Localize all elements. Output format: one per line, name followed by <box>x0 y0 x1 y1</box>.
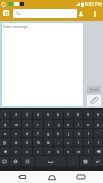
button[interactable]: Apps <box>3 10 9 16</box>
button[interactable]: $ <box>22 138 32 146</box>
button[interactable]: Recents <box>71 171 91 183</box>
button[interactable]: c <box>33 147 43 155</box>
button[interactable]: h <box>54 129 63 137</box>
button[interactable]: . <box>67 156 79 166</box>
staticText: e <box>26 122 29 127</box>
staticText: y <box>58 122 60 127</box>
button[interactable]: Send <box>87 86 101 93</box>
staticText: i <box>78 122 79 127</box>
button[interactable]: Settings <box>80 156 91 166</box>
button[interactable]: d <box>22 129 32 137</box>
staticText: 0 <box>97 112 100 117</box>
staticText: 4 <box>37 112 40 117</box>
button[interactable]: ! <box>84 147 93 155</box>
button[interactable]: 7 <box>64 110 73 119</box>
button[interactable]: Backspace <box>94 147 103 155</box>
button[interactable]: 9 <box>84 110 93 119</box>
staticText: b <box>57 149 60 154</box>
button[interactable]: q <box>0 120 10 128</box>
staticText: Send <box>90 87 99 92</box>
staticText: # <box>15 140 18 145</box>
button[interactable]: Symbols <box>0 156 9 166</box>
button[interactable]: 4 <box>33 110 43 119</box>
staticText: 9:03 PM <box>85 1 102 7</box>
staticText: p <box>97 122 100 127</box>
button[interactable]: ) <box>84 138 93 146</box>
button[interactable]: v <box>44 147 53 155</box>
button[interactable]: Space <box>35 156 66 166</box>
button[interactable]: More options <box>90 9 100 19</box>
staticText: . <box>73 159 74 164</box>
button[interactable]: @ <box>0 138 10 146</box>
button[interactable]: n <box>64 147 73 155</box>
staticText: v <box>48 149 50 154</box>
staticText: 9 <box>87 112 90 117</box>
button[interactable]: 8 <box>74 110 83 119</box>
button[interactable]: m <box>74 147 83 155</box>
button[interactable]: j <box>64 129 73 137</box>
button[interactable]: g <box>44 129 53 137</box>
staticText: / <box>98 140 100 145</box>
button[interactable]: Enter <box>92 156 103 166</box>
button[interactable]: Enter message <box>2 23 83 106</box>
button[interactable]: % <box>33 138 43 146</box>
button[interactable]: z <box>11 147 21 155</box>
button[interactable]: Shift <box>0 147 10 155</box>
button[interactable]: & <box>44 138 53 146</box>
button[interactable]: To <box>13 9 77 18</box>
staticText: 7 <box>67 112 70 117</box>
button[interactable]: t <box>44 120 53 128</box>
button[interactable]: i <box>74 120 83 128</box>
button[interactable]: w <box>11 120 21 128</box>
button[interactable]: x <box>22 147 32 155</box>
button[interactable]: k <box>74 129 83 137</box>
button[interactable]: 3 <box>22 110 32 119</box>
button[interactable]: - <box>54 138 63 146</box>
button[interactable]: # <box>11 138 21 146</box>
button[interactable]: o <box>84 120 93 128</box>
staticText: x <box>26 149 28 154</box>
staticText: z <box>15 149 17 154</box>
button[interactable]: Contacts <box>76 10 85 18</box>
button[interactable]: ( <box>74 138 83 146</box>
button[interactable]: e <box>22 120 32 128</box>
button[interactable]: Language <box>10 156 20 166</box>
button[interactable]: 5 <box>44 110 53 119</box>
button[interactable]: Back <box>12 171 32 183</box>
button[interactable]: Emoji <box>21 156 34 166</box>
staticText: % <box>37 140 40 145</box>
button[interactable]: ' <box>94 129 103 137</box>
staticText: h <box>57 131 60 136</box>
button[interactable]: p <box>94 120 103 128</box>
button[interactable]: l <box>84 129 93 137</box>
staticText: d <box>26 131 29 136</box>
button[interactable]: Attach <box>87 95 101 106</box>
button[interactable]: y <box>54 120 63 128</box>
button[interactable]: f <box>33 129 43 137</box>
staticText: w <box>15 122 18 127</box>
staticText: ) <box>88 140 90 145</box>
button[interactable]: s <box>11 129 21 137</box>
button[interactable]: / <box>94 138 103 146</box>
button[interactable]: a <box>0 129 10 137</box>
staticText: c <box>37 149 39 154</box>
button[interactable]: + <box>64 138 73 146</box>
button[interactable]: 2 <box>11 110 21 119</box>
button[interactable]: Home <box>42 171 62 183</box>
button[interactable]: u <box>64 120 73 128</box>
staticText: j <box>68 131 69 136</box>
staticText: r <box>37 122 39 127</box>
button[interactable]: 6 <box>54 110 63 119</box>
staticText: 8 <box>77 112 80 117</box>
button[interactable]: r <box>33 120 43 128</box>
staticText: l <box>88 131 89 136</box>
staticText: m <box>77 149 81 154</box>
button[interactable]: 1 <box>0 110 10 119</box>
staticText: $ <box>26 140 29 145</box>
button[interactable]: 0 <box>94 110 103 119</box>
staticText: q <box>4 122 7 127</box>
staticText: a <box>4 131 7 136</box>
button[interactable]: b <box>54 147 63 155</box>
staticText: - <box>58 140 60 145</box>
staticText: ! <box>88 149 89 154</box>
